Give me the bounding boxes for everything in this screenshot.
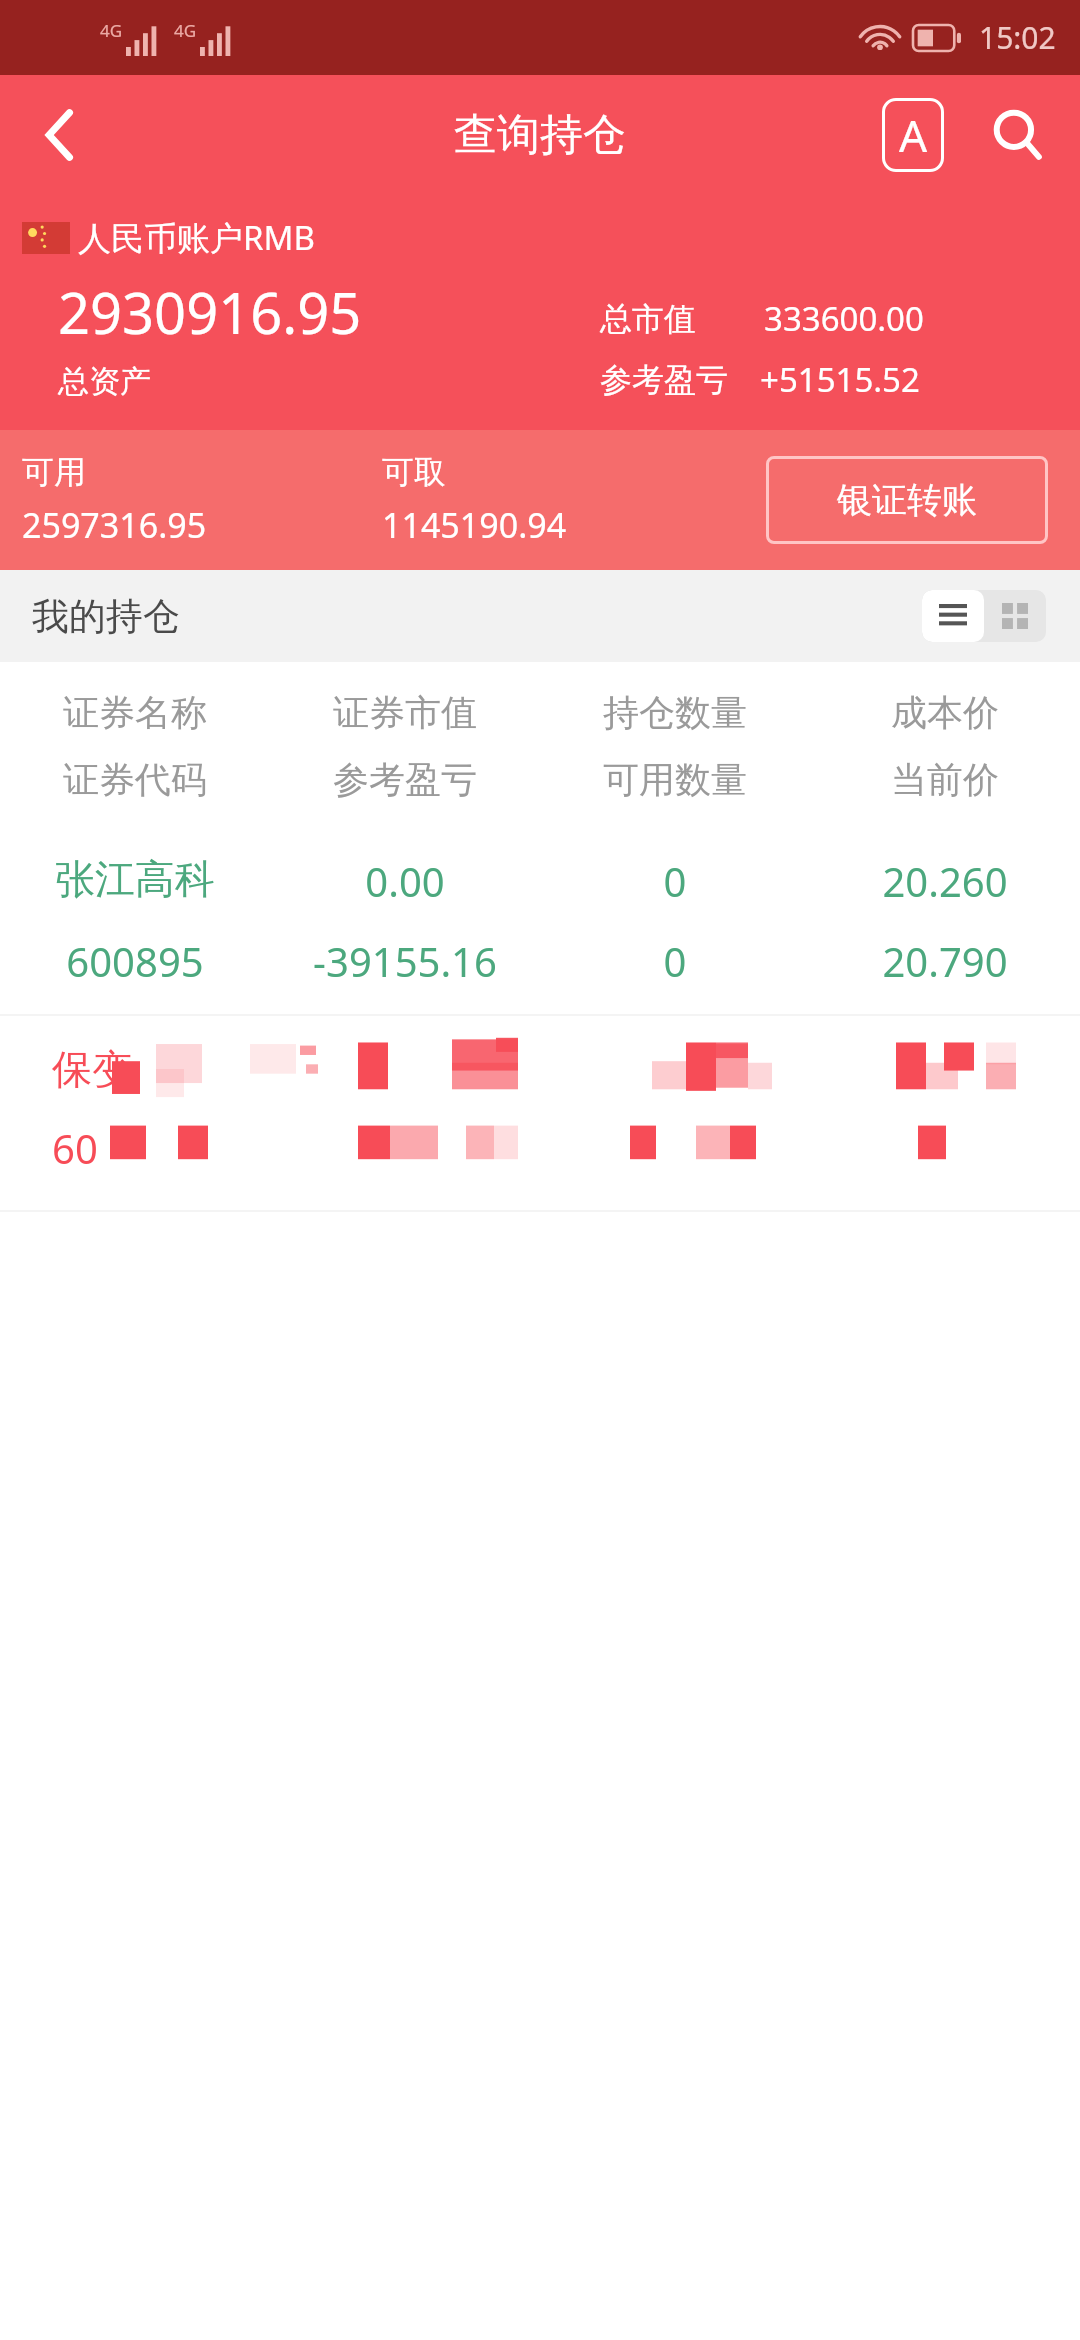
staticText: 人民币账户RMB bbox=[78, 215, 315, 260]
button[interactable]: Search bbox=[972, 90, 1062, 180]
button[interactable]: 保变 bbox=[0, 1016, 1080, 1212]
button[interactable]: Font size bbox=[868, 90, 958, 180]
staticText: A bbox=[899, 105, 928, 165]
staticText: 我的持仓 bbox=[32, 593, 180, 640]
staticText: 总资产 bbox=[58, 362, 151, 401]
staticText: 可用 bbox=[22, 452, 86, 492]
staticText: 保变 bbox=[52, 1044, 132, 1094]
staticText: 银证转账 bbox=[837, 478, 977, 522]
staticText: 20.790 bbox=[810, 934, 1080, 988]
staticText: +51515.52 bbox=[760, 357, 920, 402]
staticText: 60 bbox=[52, 1121, 98, 1175]
button[interactable]: Grid view bbox=[984, 590, 1046, 642]
staticText: 333600.00 bbox=[764, 296, 924, 341]
staticText: 0 bbox=[540, 854, 810, 908]
staticText: 可取 bbox=[382, 452, 446, 492]
button[interactable]: List view bbox=[922, 590, 984, 642]
staticText: 15:02 bbox=[979, 17, 1056, 58]
staticText: 证券市值 bbox=[270, 690, 540, 735]
staticText: 4G bbox=[174, 19, 197, 42]
button[interactable]: Back bbox=[0, 75, 120, 195]
staticText: 持仓数量 bbox=[540, 690, 810, 735]
staticText: 张江高科 bbox=[0, 854, 270, 904]
staticText: 20.260 bbox=[810, 854, 1080, 908]
staticText: 参考盈亏 bbox=[600, 360, 728, 400]
staticText: 2597316.95 bbox=[22, 502, 207, 548]
staticText: 当前价 bbox=[810, 757, 1080, 802]
staticText: 查询持仓 bbox=[454, 108, 626, 162]
staticText: 2930916.95 bbox=[58, 274, 362, 350]
staticText: 参考盈亏 bbox=[270, 757, 540, 802]
staticText: 证券名称 bbox=[0, 690, 270, 735]
staticText: 0.00 bbox=[270, 854, 540, 908]
staticText: 1145190.94 bbox=[382, 502, 567, 548]
staticText: 4G bbox=[100, 19, 123, 42]
staticText: 成本价 bbox=[810, 690, 1080, 735]
staticText: -39155.16 bbox=[270, 934, 540, 988]
staticText: 600895 bbox=[0, 934, 270, 988]
button[interactable]: 张江高科 bbox=[0, 836, 1080, 1016]
button[interactable]: 银证转账 bbox=[766, 456, 1048, 544]
staticText: 可用数量 bbox=[540, 757, 810, 802]
staticText: 总市值 bbox=[600, 299, 696, 339]
staticText: 证券代码 bbox=[0, 757, 270, 802]
staticText: 0 bbox=[540, 934, 810, 988]
